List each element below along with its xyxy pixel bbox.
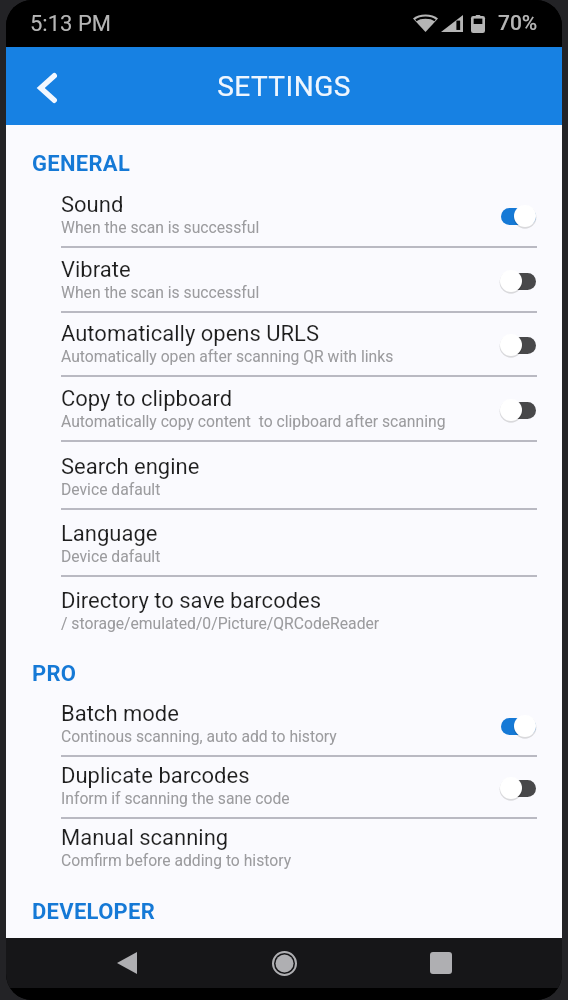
staticText: Search engine <box>61 454 200 480</box>
staticText: DEVELOPER <box>32 899 156 925</box>
staticText: SETTINGS <box>217 70 351 103</box>
button[interactable]: Sound <box>6 183 562 248</box>
button[interactable]: Copy to clipboard <box>6 377 562 442</box>
button[interactable] <box>499 397 537 423</box>
staticText: Batch mode <box>61 701 179 727</box>
staticText: Device dafault <box>61 480 161 498</box>
button[interactable]: Language <box>6 510 562 577</box>
staticText: Duplicate barcodes <box>61 763 250 789</box>
button[interactable]: Home <box>259 938 309 988</box>
staticText: Manual scanning <box>61 825 229 851</box>
staticText: Automatically open after scanning QR wit… <box>61 347 394 365</box>
staticText: Inform if scanning the sane code <box>61 789 290 807</box>
staticText: Automatically opens URLS <box>61 321 320 347</box>
staticText: Automatically copy content to clipboard … <box>61 412 446 430</box>
staticText: Sound <box>61 192 124 218</box>
staticText: Vibrate <box>61 257 131 283</box>
staticText: PRO <box>32 661 77 687</box>
button[interactable]: Duplicate barcodes <box>6 757 562 819</box>
staticText: Directory to save barcodes <box>61 588 322 614</box>
staticText: Comfirm before adding to history <box>61 851 292 869</box>
staticText: Language <box>61 521 158 547</box>
staticText: Continous scanning, auto add to history <box>61 727 337 745</box>
button[interactable]: Manual scanning <box>6 819 562 881</box>
button[interactable]: Batch mode <box>6 695 562 757</box>
button[interactable]: Back <box>102 938 152 988</box>
button[interactable] <box>499 713 537 739</box>
button[interactable]: Search engine <box>6 442 562 510</box>
button[interactable]: Back <box>21 62 73 114</box>
staticText: Device dafault <box>61 547 161 565</box>
staticText: Copy to clipboard <box>61 386 233 412</box>
button[interactable] <box>499 268 537 294</box>
staticText: When the scan is successful <box>61 218 260 236</box>
button[interactable] <box>499 775 537 801</box>
staticText: 5:13 PM <box>30 11 111 37</box>
button[interactable] <box>499 203 537 229</box>
button[interactable] <box>499 332 537 358</box>
staticText: 70% <box>498 11 538 36</box>
button[interactable]: Directory to save barcodes <box>6 577 562 644</box>
button[interactable]: Vibrate <box>6 248 562 313</box>
staticText: / storage/emulated/0/Picture/QRCodeReade… <box>61 614 380 632</box>
button[interactable]: Automatically opens URLS <box>6 313 562 377</box>
staticText: When the scan is successful <box>61 283 260 301</box>
staticText: GENERAL <box>32 151 131 177</box>
button[interactable]: Recent apps <box>416 938 466 988</box>
